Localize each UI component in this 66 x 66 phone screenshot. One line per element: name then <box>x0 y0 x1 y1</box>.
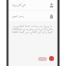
staticText: رمز عبور <box>12 14 24 18</box>
button[interactable] <box>38 57 47 61</box>
button[interactable]: Login <box>49 56 54 61</box>
button[interactable]: رمز عبور <box>9 11 56 21</box>
staticText: نام کاربری <box>12 3 26 7</box>
button[interactable]: نام کاربری <box>9 0 56 10</box>
staticText: با ورود به برنامه شما قوانین و مقررات را… <box>11 24 54 34</box>
